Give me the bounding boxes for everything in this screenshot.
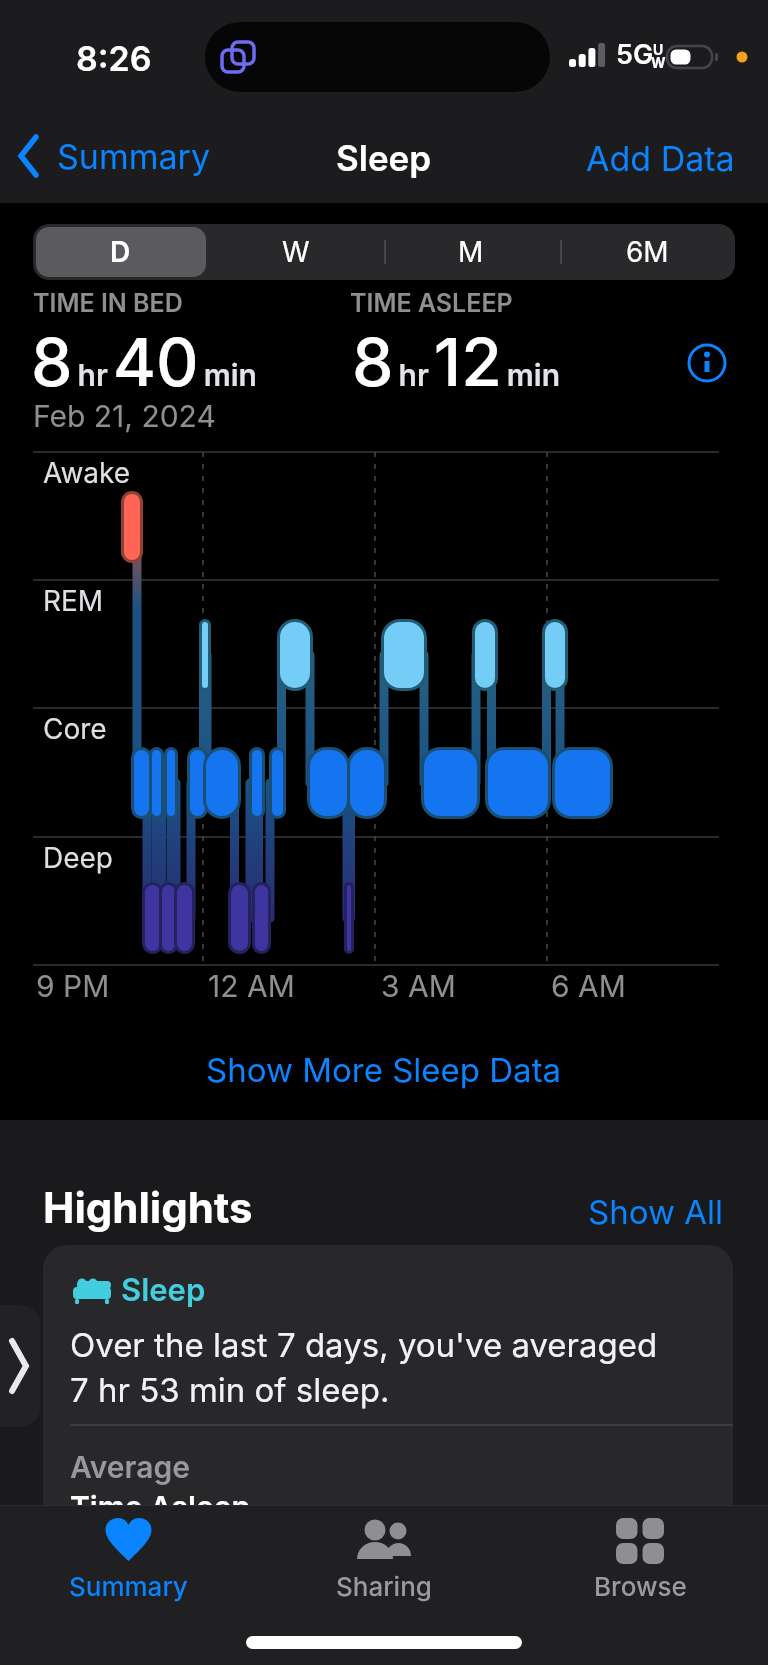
staticText: REM: [43, 584, 104, 618]
staticText: 9 PM: [36, 968, 110, 1004]
button[interactable]: Sleep: [43, 1245, 733, 1665]
button[interactable]: 6M: [559, 224, 735, 280]
staticText: 5G: [616, 38, 654, 71]
staticText: W: [651, 54, 666, 71]
staticText: M: [458, 235, 484, 269]
staticText: TIME ASLEEP: [350, 288, 513, 318]
staticText: Sleep: [336, 137, 432, 179]
staticText: 8 hr 12 min: [352, 322, 560, 402]
button[interactable]: Sharing: [256, 1518, 512, 1602]
staticText: Summary: [57, 136, 211, 177]
staticText: 12 AM: [208, 968, 295, 1004]
staticText: Average: [70, 1449, 190, 1485]
staticText: Awake: [43, 456, 131, 490]
staticText: D: [110, 235, 131, 269]
staticText: 6 AM: [551, 968, 626, 1004]
button[interactable]: Summary: [14, 130, 211, 182]
button[interactable]: Show More Sleep Data: [206, 1050, 562, 1090]
staticText: Core: [43, 712, 107, 746]
button[interactable]: M: [383, 224, 559, 280]
staticText: Add Data: [586, 138, 735, 179]
button[interactable]: Browse: [512, 1518, 768, 1602]
staticText: Feb 21, 2024: [33, 398, 216, 434]
staticText: Show All: [588, 1192, 723, 1232]
staticText: Deep: [43, 841, 113, 875]
button[interactable]: Summary: [0, 1518, 256, 1602]
staticText: 8:26: [76, 38, 152, 79]
staticText: Summary: [69, 1571, 188, 1602]
staticText: Time Asleep: [70, 1489, 251, 1525]
staticText: 6M: [626, 235, 669, 269]
button[interactable]: [686, 342, 728, 384]
button[interactable]: W: [208, 224, 383, 280]
staticText: TIME IN BED: [33, 288, 183, 318]
staticText: Over the last 7 days, you've averaged 7 …: [70, 1325, 658, 1410]
staticText: Browse: [594, 1571, 687, 1602]
button[interactable]: [0, 1305, 40, 1427]
staticText: Sleep: [121, 1271, 206, 1309]
button[interactable]: Add Data: [586, 138, 735, 179]
staticText: W: [282, 235, 310, 269]
staticText: Sharing: [336, 1571, 432, 1602]
staticText: 3 AM: [381, 968, 456, 1004]
staticText: U: [653, 41, 664, 58]
staticText: Show More Sleep Data: [206, 1050, 562, 1090]
staticText: 8 hr 40 min: [31, 322, 257, 402]
staticText: Highlights: [43, 1182, 253, 1233]
button[interactable]: D: [33, 224, 208, 280]
button[interactable]: Show All: [588, 1192, 723, 1232]
